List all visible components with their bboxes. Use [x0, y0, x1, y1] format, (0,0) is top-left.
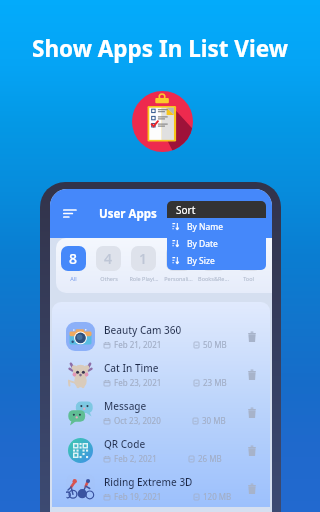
staticText: User Apps: [99, 206, 157, 222]
button[interactable]: Open navigation menu: [63, 208, 76, 219]
staticText: 120 MB: [203, 491, 232, 502]
button[interactable]: Uninstall: [245, 443, 259, 457]
button[interactable]: Uninstall: [245, 329, 259, 343]
button[interactable]: 1: [196, 246, 231, 282]
button[interactable]: By Size: [167, 252, 266, 269]
staticText: QR Code: [104, 437, 146, 451]
staticText: Feb 21, 2021: [114, 339, 162, 350]
staticText: Feb 19, 2021: [114, 491, 162, 502]
staticText: Beauty Cam 360: [104, 323, 182, 337]
staticText: By Name: [187, 221, 224, 233]
staticText: Books&Re...: [198, 275, 229, 282]
staticText: 30 MB: [202, 415, 226, 426]
button[interactable]: Beauty Cam 360: [52, 317, 270, 355]
button[interactable]: Cat In Time: [52, 355, 270, 393]
staticText: 23 MB: [203, 377, 227, 388]
staticText: Show Apps In List View: [0, 33, 320, 64]
button[interactable]: Uninstall: [245, 367, 259, 381]
button[interactable]: Message: [52, 393, 270, 431]
staticText: Sort: [176, 203, 196, 217]
staticText: 8: [69, 249, 78, 268]
staticText: Message: [104, 399, 147, 413]
button[interactable]: By Date: [167, 235, 266, 252]
staticText: 1: [139, 249, 148, 268]
staticText: By Size: [187, 255, 215, 267]
staticText: 1: [209, 249, 218, 268]
button[interactable]: 4: [91, 246, 126, 282]
button[interactable]: Riding Extreme 3D: [52, 469, 270, 507]
staticText: 4: [104, 249, 113, 268]
button[interactable]: 1: [231, 246, 266, 282]
staticText: By Date: [187, 238, 218, 250]
staticText: Oct 23, 2020: [114, 415, 161, 426]
staticText: Feb 23, 2021: [114, 377, 162, 388]
staticText: Riding Extreme 3D: [104, 475, 193, 489]
staticText: 1: [174, 249, 183, 268]
button[interactable]: Uninstall: [245, 405, 259, 419]
staticText: Cat In Time: [104, 361, 159, 375]
button[interactable]: 1: [161, 246, 196, 282]
button[interactable]: Uninstall: [245, 481, 259, 495]
staticText: Role Playi...: [129, 275, 159, 282]
staticText: Personali...: [164, 275, 193, 282]
button[interactable]: QR Code: [52, 431, 270, 469]
button[interactable]: 1: [126, 246, 161, 282]
staticText: Tool: [243, 275, 254, 282]
staticText: All: [70, 275, 77, 282]
staticText: 50 MB: [203, 339, 227, 350]
staticText: Others: [100, 275, 118, 282]
button[interactable]: By Name: [167, 218, 266, 235]
button[interactable]: 8: [56, 246, 91, 282]
staticText: 26 MB: [198, 453, 222, 464]
staticText: Feb 2, 2021: [114, 453, 157, 464]
